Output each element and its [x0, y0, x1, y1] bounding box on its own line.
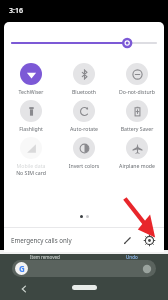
staticText: Emergency calls only	[11, 236, 72, 244]
button[interactable]: Flashlight	[5, 100, 57, 132]
other: Voice search	[142, 264, 152, 274]
staticText: Flashlight	[5, 125, 57, 132]
staticText: Mobile data	[5, 162, 57, 169]
button[interactable]: Auto-rotate	[58, 100, 110, 132]
button[interactable]: Emergency calls only	[11, 236, 72, 244]
staticText: Bluetooth	[58, 88, 110, 95]
staticText: Battery Saver	[111, 125, 163, 132]
button[interactable]: Battery Saver	[111, 100, 163, 132]
button[interactable]: TechWiser	[5, 63, 57, 95]
staticText: Invert colors	[58, 162, 110, 169]
button[interactable]: Back	[18, 283, 30, 295]
staticText: TechWiser	[5, 88, 57, 95]
button[interactable]: Airplane mode	[111, 137, 163, 169]
button[interactable]: Mobile data	[5, 137, 57, 176]
staticText: G	[19, 263, 25, 274]
staticText: Auto-rotate	[58, 125, 110, 132]
staticText: No SIM card	[5, 169, 57, 176]
button[interactable]: Invert colors	[58, 137, 110, 169]
staticText: Do-not-disturb	[111, 88, 163, 95]
button[interactable]: Home	[72, 285, 97, 290]
button[interactable]: Edit tiles	[119, 232, 135, 248]
staticText: Airplane mode	[111, 162, 163, 169]
button[interactable]: Brightness	[12, 36, 156, 50]
button[interactable]: Settings	[141, 232, 157, 248]
staticText: 3:16	[9, 6, 23, 16]
button[interactable]: Do-not-disturb	[111, 63, 163, 95]
button[interactable]: Bluetooth	[58, 63, 110, 95]
staticText: Item removed	[30, 254, 60, 260]
staticText: Undo	[126, 254, 138, 260]
button[interactable]: G	[12, 260, 156, 277]
